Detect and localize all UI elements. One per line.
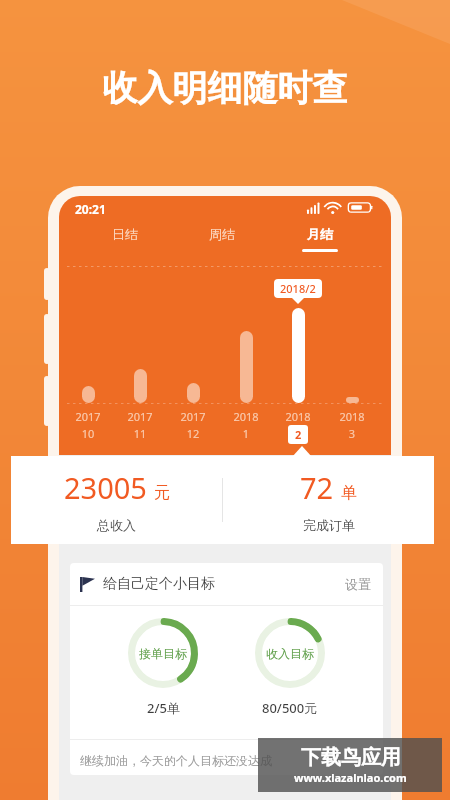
staticText: 80/500元 — [262, 699, 318, 717]
staticText: 1 — [224, 426, 268, 441]
staticText: 2018 — [224, 409, 268, 424]
button[interactable]: 设置 — [333, 576, 383, 592]
button[interactable] — [134, 369, 147, 403]
button[interactable]: 接单目标 — [128, 618, 198, 717]
staticText: 收入目标 — [266, 646, 314, 661]
staticText: 下载鸟应用 — [301, 745, 401, 770]
staticText: 收入明细随时查 — [0, 66, 450, 110]
staticText: 月结 — [307, 226, 333, 242]
button[interactable] — [240, 331, 253, 403]
staticText: 3 — [330, 426, 374, 441]
staticText: 2018 — [330, 409, 374, 424]
staticText: 继续加油，今天的个人目标还没达成 — [80, 753, 272, 768]
staticText: www.xlazalnlao.com — [294, 770, 407, 785]
button[interactable] — [346, 397, 359, 403]
button[interactable]: 日结 — [93, 226, 157, 262]
staticText: 11 — [118, 426, 162, 441]
button[interactable]: 收入目标 — [255, 618, 325, 717]
button[interactable]: 2 — [288, 425, 308, 444]
staticText: 2018 — [276, 409, 320, 424]
staticText: 2017 — [171, 409, 215, 424]
button[interactable]: 周结 — [190, 226, 254, 262]
staticText: 72 — [300, 468, 334, 507]
staticText: 接单目标 — [139, 646, 187, 661]
staticText: 设置 — [345, 576, 371, 592]
staticText: 23005 — [64, 468, 147, 507]
other: Status icons — [307, 201, 379, 214]
staticText: 2 — [295, 427, 302, 442]
staticText: 总收入 — [97, 517, 136, 533]
staticText: 20:21 — [75, 201, 106, 217]
staticText: 2018/2 — [280, 281, 316, 296]
staticText: 元 — [154, 483, 170, 503]
staticText: 周结 — [209, 226, 235, 242]
staticText: 2017 — [118, 409, 162, 424]
staticText: 日结 — [112, 226, 138, 242]
staticText: 给自己定个小目标 — [103, 575, 215, 593]
button[interactable] — [187, 383, 200, 403]
button[interactable]: 23005 — [11, 456, 434, 544]
staticText: 2/5单 — [147, 699, 180, 717]
button[interactable]: 给自己定个小目标 — [70, 563, 383, 605]
button[interactable]: 月结 — [288, 226, 352, 262]
staticText: 单 — [341, 483, 357, 503]
staticText: 2017 — [66, 409, 110, 424]
staticText: 完成订单 — [303, 517, 355, 533]
button[interactable] — [292, 308, 305, 403]
staticText: 10 — [66, 426, 110, 441]
button[interactable] — [82, 386, 95, 403]
staticText: 12 — [171, 426, 215, 441]
